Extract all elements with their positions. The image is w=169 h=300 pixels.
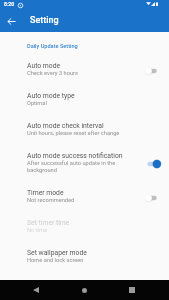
button[interactable]: Auto mode check interval	[0, 122, 169, 152]
staticText: background	[27, 167, 57, 174]
staticText: Daily Update Setting	[27, 43, 78, 50]
staticText: Optimal	[27, 100, 47, 107]
staticText: Check every 3 hours	[27, 70, 78, 77]
staticText: No time	[27, 227, 47, 234]
button[interactable]: Switch off	[142, 191, 166, 205]
button[interactable]: Recent apps	[112, 280, 152, 300]
button[interactable]: Timer mode	[0, 189, 169, 219]
staticText: Not recommended	[27, 197, 75, 204]
button[interactable]: Auto mode type	[0, 92, 169, 122]
staticText: Timer mode	[27, 189, 64, 197]
staticText: Auto mode type	[27, 92, 75, 100]
button[interactable]: Switch on	[142, 157, 166, 171]
button[interactable]: Set timer time	[0, 219, 169, 249]
staticText: Setting	[30, 15, 59, 26]
button[interactable]: Auto mode	[0, 62, 169, 92]
staticText: Auto mode	[27, 62, 61, 70]
staticText: After successful auto update in the	[27, 160, 116, 167]
button[interactable]: Switch off	[142, 64, 166, 78]
staticText: Set wallpaper mode	[27, 249, 87, 257]
button[interactable]: Back	[16, 280, 56, 300]
staticText: 8:20	[4, 1, 15, 7]
button[interactable]: Navigate up	[3, 13, 20, 30]
staticText: Auto mode check interval	[27, 122, 104, 130]
staticText: Auto mode success notification	[27, 152, 123, 160]
button[interactable]: Set wallpaper mode	[0, 249, 169, 279]
staticText: Set timer time	[27, 219, 70, 227]
button[interactable]: Auto mode success notification	[0, 152, 169, 189]
button[interactable]: Home	[64, 280, 104, 300]
staticText: Unit hours, please reset after change	[27, 130, 120, 137]
staticText: Home and lock screen	[27, 257, 84, 264]
